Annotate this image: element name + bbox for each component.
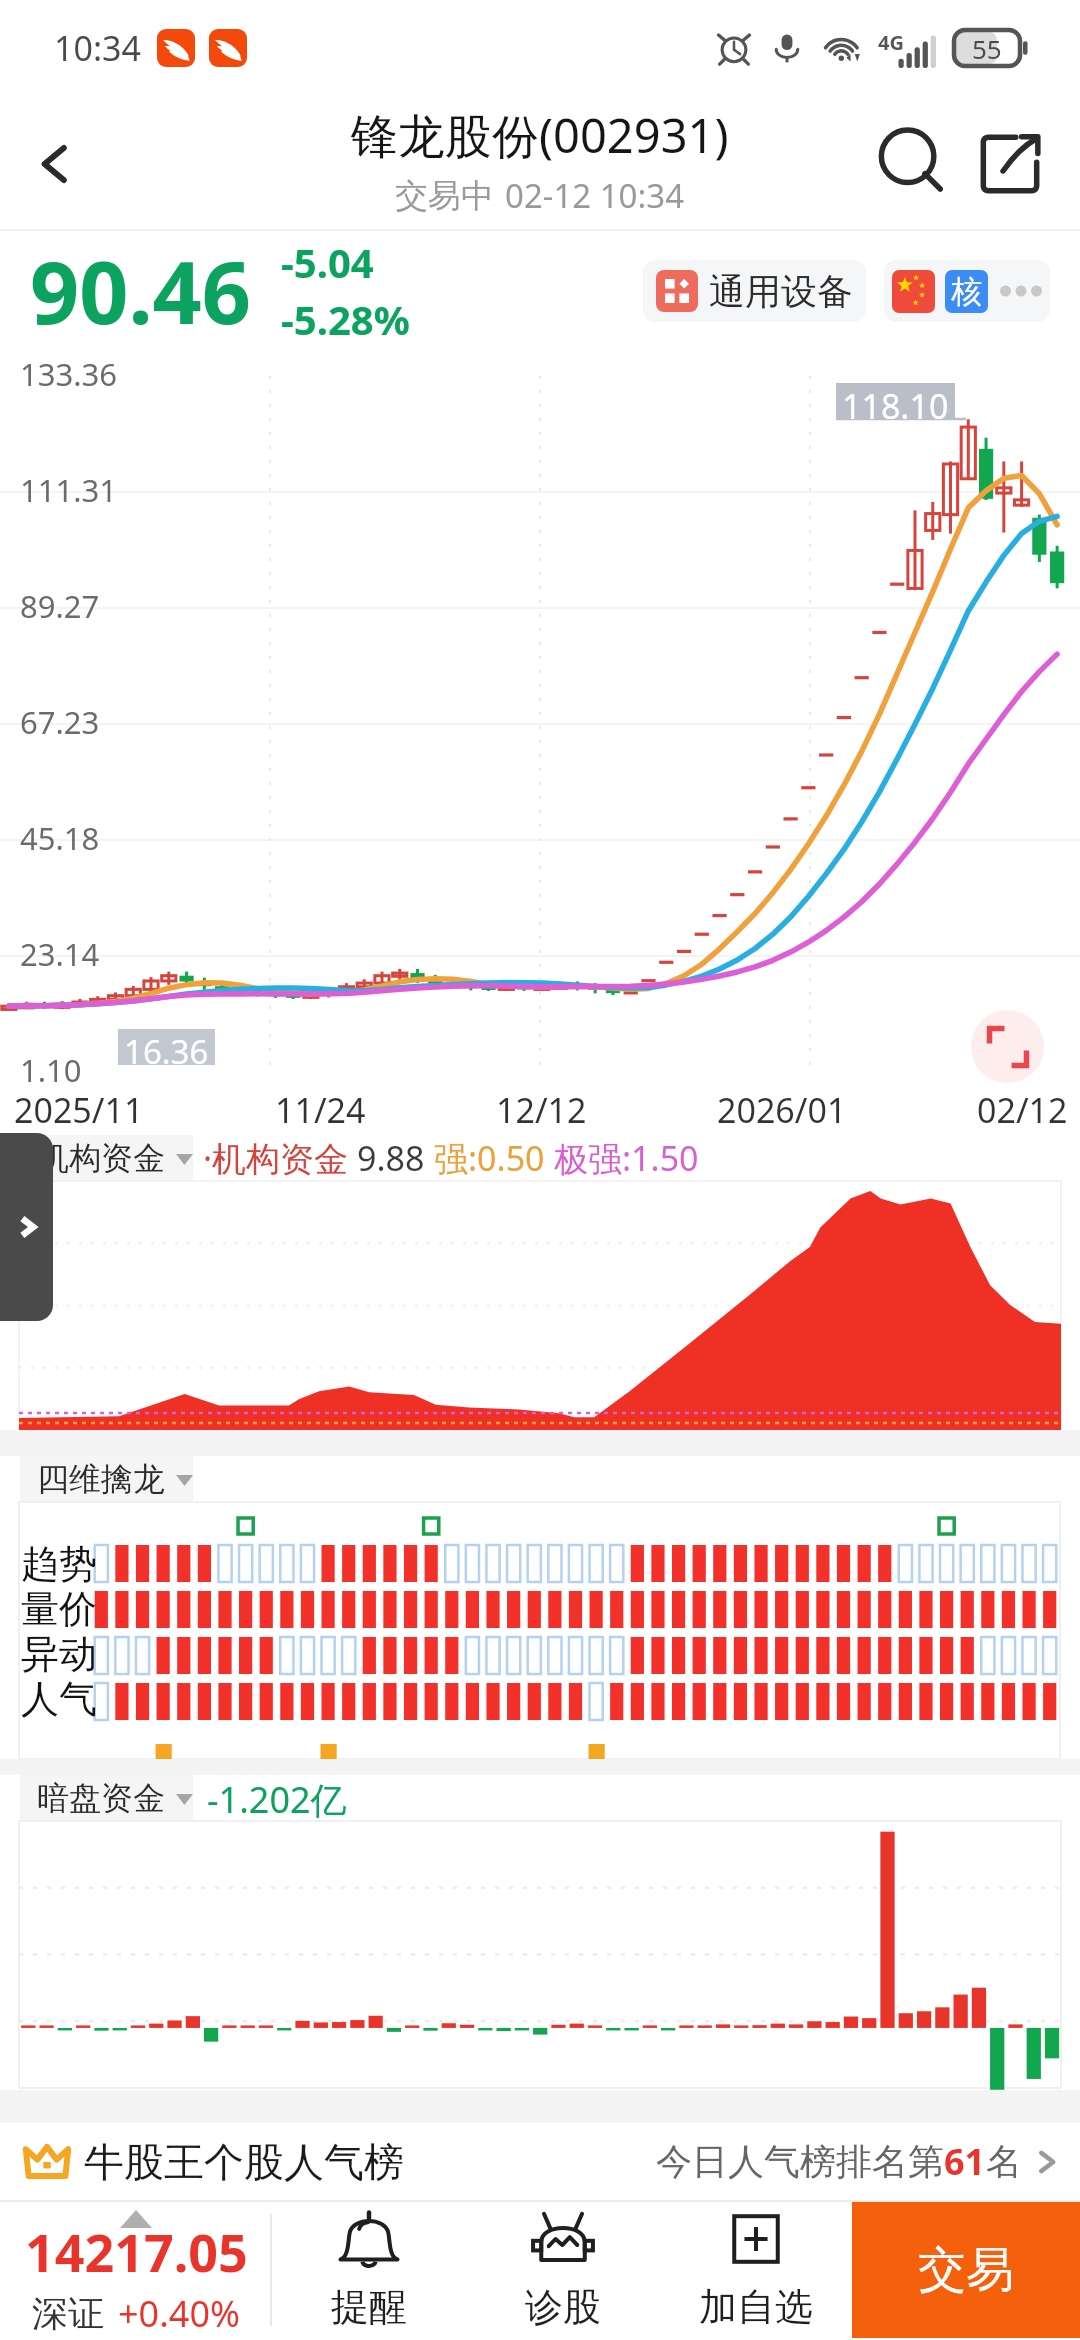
staticText: 89.27: [20, 585, 100, 627]
staticText: 9.88: [357, 1135, 434, 1181]
staticText: 61: [944, 2137, 986, 2186]
staticText: 90.46: [30, 232, 251, 349]
staticText: 45.18: [20, 817, 100, 859]
staticText: 核: [951, 272, 982, 311]
staticText: 1.10: [20, 1049, 82, 1091]
button[interactable]: 牛股王个股人气榜: [0, 2123, 1080, 2200]
button[interactable]: Search: [866, 96, 962, 231]
button[interactable]: Expand panel: [0, 1133, 53, 1321]
staticText: 12/12: [496, 1087, 587, 1133]
staticText: 14217.05: [25, 2216, 248, 2287]
staticText: 趋势: [21, 1540, 97, 1585]
button[interactable]: 四维擒龙: [20, 1456, 193, 1502]
staticText: -1.202亿: [207, 1775, 347, 1821]
staticText: 67.23: [20, 701, 100, 743]
staticText: 交易中: [395, 175, 494, 217]
staticText: 16.36: [124, 1029, 209, 1065]
staticText: 四维擒龙: [37, 1459, 165, 1499]
staticText: 机构资金: [37, 1138, 165, 1178]
staticText: 极强:1.50: [554, 1135, 699, 1181]
staticText: 111.31: [20, 469, 117, 511]
button[interactable]: 诊股: [466, 2202, 659, 2338]
staticText: 10:34: [54, 25, 141, 71]
staticText: 强:0.50: [434, 1135, 554, 1181]
button[interactable]: Share: [962, 96, 1058, 231]
staticText: 55: [972, 31, 1002, 66]
staticText: 4G: [878, 29, 904, 56]
button[interactable]: 加自选: [659, 2202, 852, 2338]
staticText: 提醒: [331, 2283, 407, 2331]
button[interactable]: 交易: [852, 2202, 1080, 2338]
staticText: -5.04: [281, 235, 374, 289]
button[interactable]: 机构资金: [20, 1135, 193, 1181]
staticText: 名: [986, 2139, 1022, 2184]
staticText: 通用设备: [709, 269, 853, 314]
staticText: 量价: [21, 1585, 97, 1630]
button[interactable]: 14217.05: [0, 2202, 272, 2338]
button[interactable]: Back: [0, 96, 110, 231]
staticText: 23.14: [20, 933, 100, 975]
button[interactable]: 暗盘资金: [20, 1775, 193, 1821]
staticText: 2026/01: [717, 1087, 847, 1133]
staticText: 133.36: [20, 353, 117, 395]
button[interactable]: Fullscreen: [971, 1010, 1044, 1083]
staticText: 今日人气榜排名第: [656, 2139, 944, 2184]
button[interactable]: 通用设备: [643, 260, 866, 322]
staticText: ·机构资金: [203, 1135, 357, 1181]
staticText: 暗盘资金: [37, 1778, 165, 1818]
staticText: 11/24: [275, 1087, 366, 1133]
staticText: 118.10: [842, 383, 949, 419]
staticText: 02/12: [977, 1087, 1068, 1133]
staticText: 交易: [918, 2240, 1014, 2300]
staticText: +0.40%: [118, 2289, 240, 2338]
staticText: 人气: [21, 1675, 97, 1720]
staticText: 2025/11: [14, 1087, 144, 1133]
staticText: -5.28%: [281, 292, 410, 346]
staticText: 02-12 10:34: [505, 173, 685, 218]
staticText: 牛股王个股人气榜: [84, 2137, 404, 2187]
button[interactable]: 提醒: [272, 2202, 466, 2338]
staticText: 深证: [32, 2291, 104, 2336]
staticText: 锋龙股份(002931): [351, 103, 729, 167]
staticText: 异动: [21, 1630, 97, 1675]
staticText: 诊股: [525, 2283, 601, 2331]
button[interactable]: 核: [884, 260, 1050, 322]
staticText: 加自选: [699, 2283, 813, 2331]
